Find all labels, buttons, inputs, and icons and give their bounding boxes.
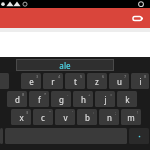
staticText: 6 [102,74,105,79]
button[interactable]: n [99,109,119,125]
staticText: 4 [58,74,61,79]
staticText: x [19,112,24,123]
button[interactable]: i [131,73,149,89]
button[interactable]: g [51,91,71,107]
staticText: 8 [144,74,147,79]
button[interactable]: Symbols [0,128,3,144]
staticText: u [117,76,122,87]
button[interactable]: j [95,91,115,107]
button[interactable]: k [117,91,137,107]
staticText: f [38,94,41,105]
staticText: * [44,92,47,97]
staticText: " [49,110,51,115]
staticText: j [104,94,107,105]
staticText: v [63,112,68,123]
staticText: e [29,76,34,87]
button[interactable]: z [87,73,107,89]
button[interactable]: r [43,73,63,89]
button[interactable]: c [33,109,53,125]
button[interactable]: Enter [129,128,149,144]
staticText: ! [137,110,139,115]
staticText: + [88,92,91,97]
staticText: i [139,76,142,87]
staticText: h [81,94,86,105]
staticText: $ [26,110,29,115]
button[interactable]: v [55,109,75,125]
staticText: ; [115,110,117,115]
staticText: t [74,76,77,87]
staticText: r [51,76,55,87]
staticText: : [93,110,95,115]
staticText: ale [59,60,71,71]
staticText: k [125,94,130,105]
button[interactable]: e [21,73,41,89]
button[interactable]: x [11,109,31,125]
staticText: 8 [22,92,25,97]
button[interactable]: b [77,109,97,125]
button[interactable]: ale [16,59,114,71]
staticText: c [41,112,45,123]
staticText: n [107,112,112,123]
button[interactable]: d [7,91,27,107]
staticText: 7 [124,74,127,79]
button[interactable]: t [65,73,85,89]
staticText: z [95,76,99,87]
staticText: ' [72,110,73,115]
button[interactable]: u [109,73,129,89]
staticText: m [127,112,135,123]
staticText: 3 [36,74,39,79]
button[interactable]: h [73,91,93,107]
staticText: b [85,112,90,123]
staticText: d [15,94,20,105]
button[interactable]: m [121,109,141,125]
staticText: - [67,92,69,97]
button[interactable]: f [29,91,49,107]
button[interactable]: Menu [131,12,145,24]
staticText: 5 [80,74,83,79]
staticText: g [59,94,64,105]
staticText: = [110,92,113,97]
